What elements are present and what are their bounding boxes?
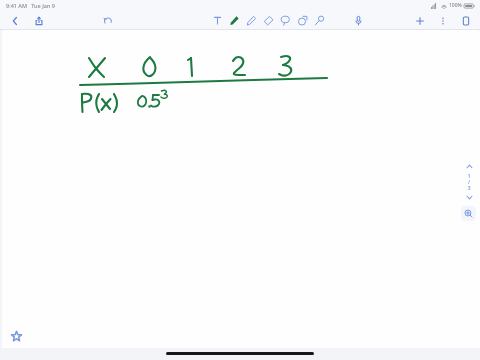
button[interactable]: Shape tool (296, 14, 309, 27)
button[interactable]: Share (32, 14, 46, 28)
button[interactable]: Highlighter (245, 14, 258, 27)
button[interactable]: Pen tool (228, 14, 241, 27)
button[interactable]: Laser pointer (313, 14, 326, 27)
button[interactable]: Favorite (8, 328, 24, 344)
button[interactable]: Text tool (211, 14, 224, 27)
staticText: 100% (449, 2, 462, 9)
button[interactable]: More options (436, 14, 450, 28)
staticText: 9:41 AM Tue Jan 9 (6, 2, 55, 9)
button[interactable]: Record audio (352, 14, 365, 27)
button[interactable]: 1 / 3 (467, 172, 471, 191)
button[interactable]: Add page (413, 14, 427, 28)
button[interactable]: Lasso (279, 14, 292, 27)
button[interactable]: Next page (463, 191, 475, 203)
button[interactable]: Previous page (463, 160, 475, 172)
button[interactable]: Eraser (262, 14, 275, 27)
button[interactable]: Back (8, 14, 22, 28)
button[interactable]: Undo (101, 14, 115, 28)
button[interactable]: Page thumbnails (459, 14, 473, 28)
button[interactable]: Zoom (461, 206, 476, 221)
